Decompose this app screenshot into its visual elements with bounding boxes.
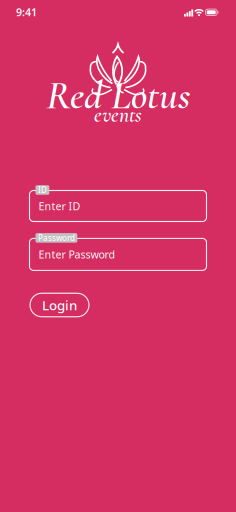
staticText: Password <box>38 233 75 243</box>
staticText: ID <box>38 185 47 195</box>
staticText: Login <box>42 296 77 314</box>
button[interactable]: Enter ID <box>29 185 206 226</box>
staticText: Red Lotus <box>46 71 190 120</box>
staticText: Enter ID <box>38 199 80 213</box>
staticText: Enter Password <box>38 247 115 261</box>
button[interactable]: Enter Password <box>29 233 206 275</box>
staticText: events <box>94 102 142 128</box>
staticText: 9:41 <box>16 5 37 19</box>
button[interactable]: Login <box>30 293 89 317</box>
